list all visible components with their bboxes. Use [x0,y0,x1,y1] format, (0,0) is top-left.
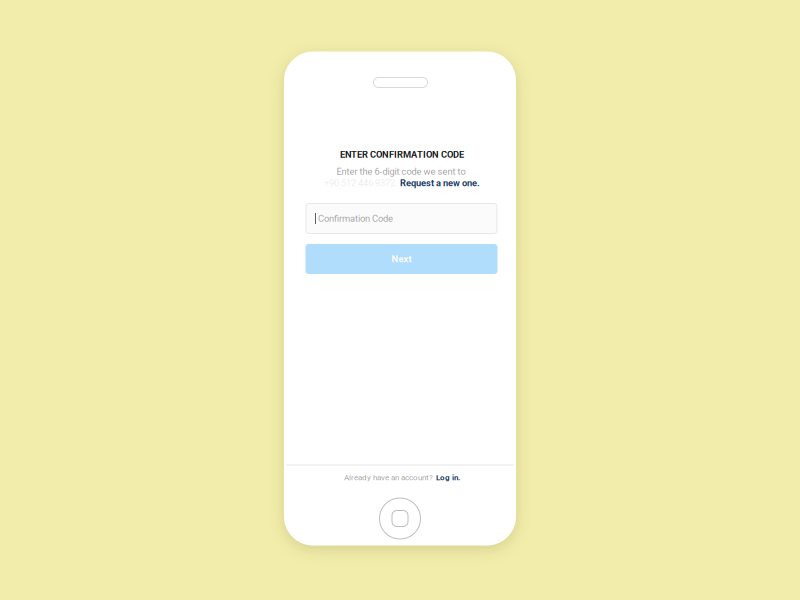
staticText: Confirmation Code [318,213,393,224]
staticText: Enter the 6-digit code we sent to [336,166,465,177]
staticText: Already have an account? [344,473,433,482]
staticText: Next [391,253,411,264]
button[interactable]: Already have an account? [338,469,466,486]
staticText: Log in. [436,473,460,482]
staticText: Request a new one. [400,177,480,188]
button[interactable]: Confirmation Code [306,203,497,233]
button[interactable]: Home [379,498,420,539]
staticText: ENTER CONFIRMATION CODE [340,149,464,160]
button[interactable]: Request a new one. [400,177,480,188]
staticText: +90 512 446 9372. [324,177,397,188]
button[interactable]: Next [305,244,497,274]
